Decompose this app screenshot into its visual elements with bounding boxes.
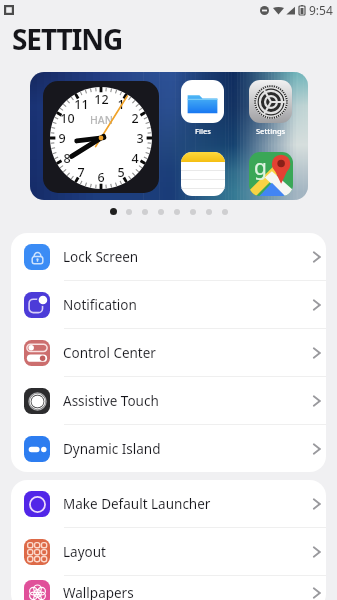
staticText: 9	[58, 130, 66, 147]
staticText: Lock Screen	[63, 248, 139, 266]
staticText: 7	[77, 164, 85, 181]
button[interactable]: Wallpapers	[11, 576, 326, 600]
staticText: Wallpapers	[63, 584, 134, 600]
staticText: 10	[60, 110, 75, 127]
staticText: 9:54	[309, 2, 333, 18]
staticText: Layout	[63, 543, 106, 561]
staticText: Settings	[256, 126, 286, 136]
button[interactable]: Layout	[11, 528, 326, 575]
staticText: 6	[97, 169, 105, 186]
button[interactable]: Control Center	[11, 329, 326, 376]
staticText: 3	[136, 130, 144, 147]
staticText: 4	[131, 150, 139, 167]
staticText: 8	[63, 150, 71, 167]
staticText: 5	[117, 164, 125, 181]
staticText: 2	[131, 110, 139, 127]
staticText: Assistive Touch	[63, 392, 159, 410]
button[interactable]: Notification	[11, 281, 326, 328]
staticText: Dynamic Island	[63, 440, 161, 458]
button[interactable]: Assistive Touch	[11, 377, 326, 424]
staticText: Notification	[63, 296, 137, 314]
button[interactable]: Make Default Launcher	[11, 480, 326, 527]
staticText: Make Default Launcher	[63, 495, 211, 513]
staticText: 11	[74, 96, 89, 113]
button[interactable]: Lock Screen	[11, 233, 326, 280]
staticText: HAN	[90, 113, 113, 127]
staticText: Control Center	[63, 344, 156, 362]
staticText: SETTING	[12, 20, 123, 58]
staticText: 1	[117, 96, 125, 113]
staticText: Files	[195, 126, 211, 136]
staticText: g	[254, 153, 267, 182]
button[interactable]: Dynamic Island	[11, 425, 326, 472]
staticText: 12	[94, 91, 109, 108]
